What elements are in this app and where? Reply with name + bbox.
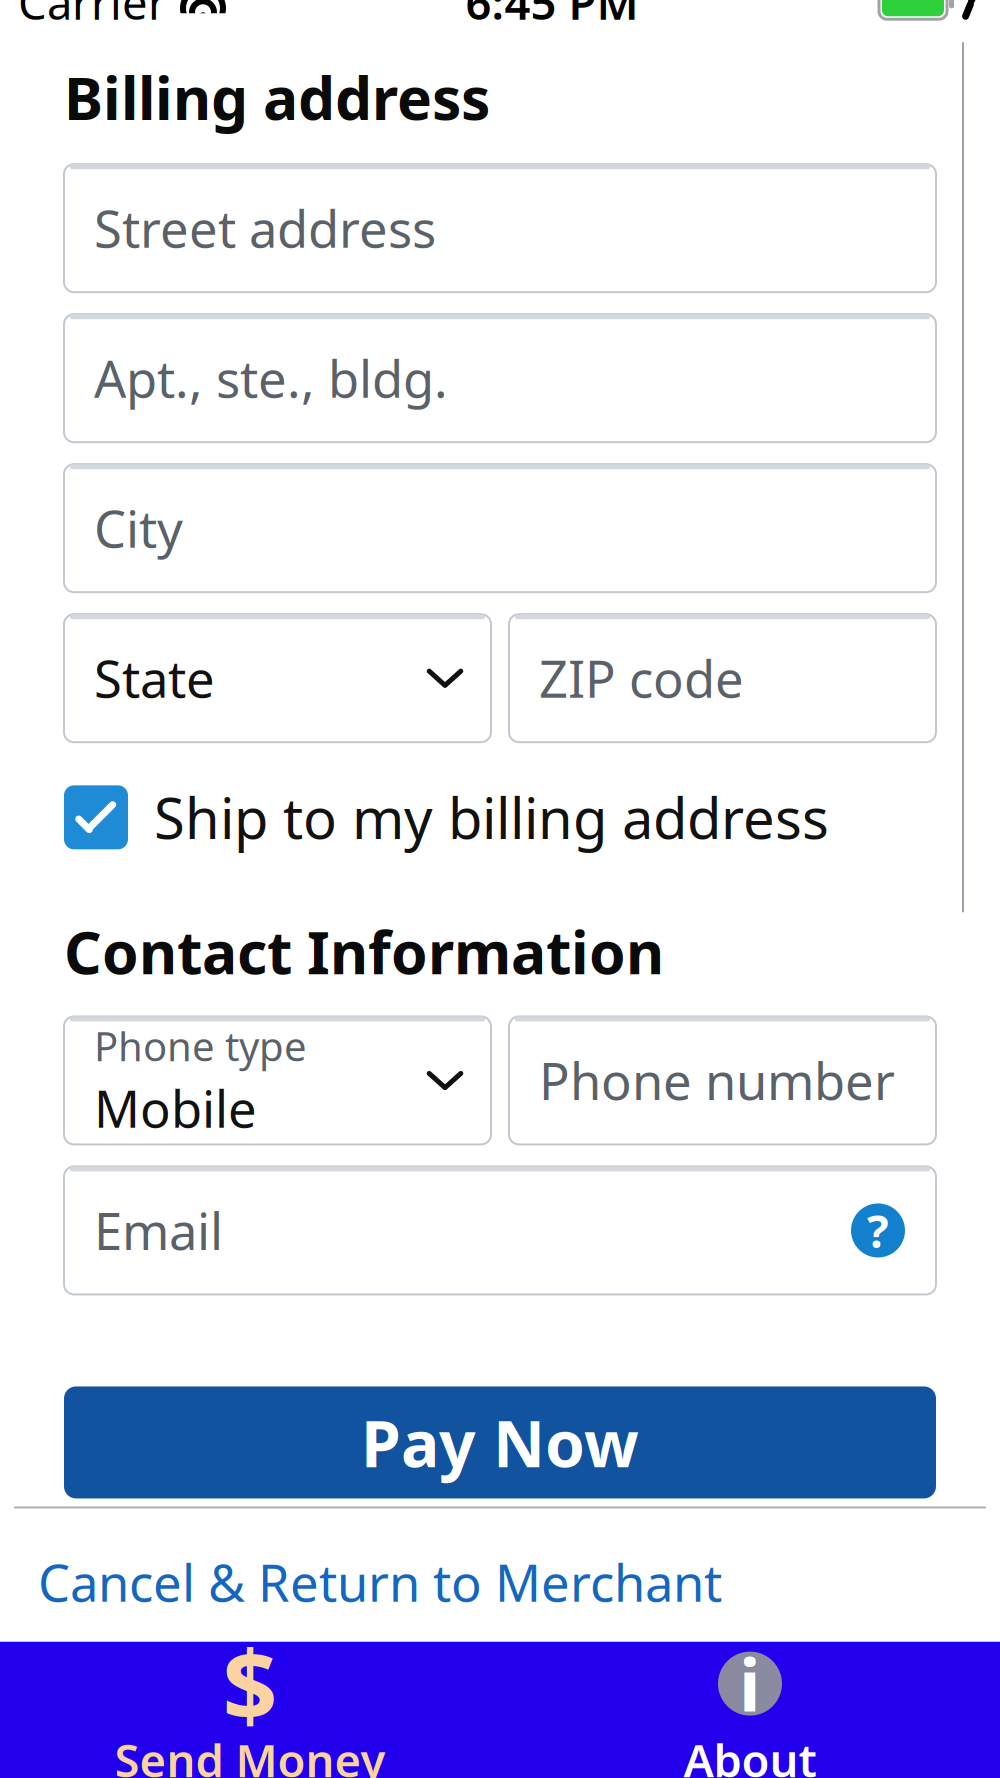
button[interactable]: Email help [842, 1194, 914, 1266]
staticText: ZIP code [539, 644, 744, 712]
staticText: Cancel & Return to Merchant [38, 1548, 722, 1616]
button[interactable]: City [64, 464, 936, 592]
staticText: Send Money [114, 1730, 385, 1778]
button[interactable]: Apt., ste., bldg. [64, 314, 936, 442]
button[interactable]: Street address [64, 164, 936, 292]
staticText: About [683, 1730, 816, 1778]
staticText: Billing address [64, 58, 490, 136]
staticText: Ship to my billing address [154, 780, 829, 855]
staticText: i [739, 1636, 761, 1731]
staticText: Apt., ste., bldg. [94, 344, 448, 412]
button[interactable]: $ [0, 1642, 500, 1778]
button[interactable]: Phone number [509, 1016, 936, 1144]
staticText: Carrier [18, 0, 167, 32]
staticText: City [94, 494, 183, 562]
staticText: $ [222, 1620, 277, 1747]
button[interactable]: Email [64, 1166, 936, 1294]
staticText: Phone number [539, 1047, 895, 1114]
staticText: Pay Now [361, 1400, 639, 1485]
staticText: Mobile [94, 1074, 257, 1142]
staticText: Email [94, 1197, 223, 1264]
staticText: Street address [94, 194, 436, 262]
staticText: Contact Information [64, 912, 664, 990]
button[interactable]: Phone type [64, 1016, 491, 1144]
staticText: ? [867, 1200, 889, 1260]
button[interactable]: ZIP code [509, 614, 936, 742]
button[interactable]: Ship to my billing address [0, 762, 1000, 873]
button[interactable]: i [500, 1642, 1000, 1778]
staticText: Phone type [94, 1019, 307, 1072]
button[interactable]: Cancel & Return to Merchant [0, 1522, 1000, 1642]
staticText: State [94, 644, 215, 712]
staticText: 6:45 PM [465, 0, 638, 32]
button[interactable]: Pay Now [64, 1386, 936, 1498]
button[interactable]: State [64, 614, 491, 742]
